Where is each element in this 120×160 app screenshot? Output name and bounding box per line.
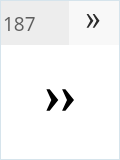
button[interactable]: 187 (1, 1, 69, 45)
staticText: 187 (3, 11, 36, 37)
button[interactable]: Next (69, 1, 119, 45)
